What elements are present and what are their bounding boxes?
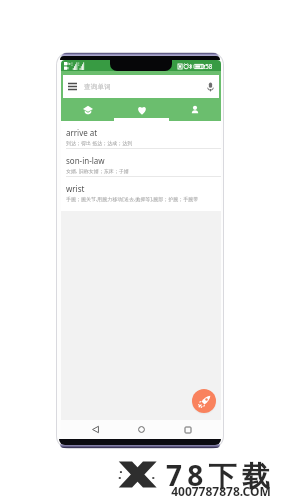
button[interactable]: Home [128,421,154,438]
staticText: 到达；得出 抵达；达成；达到 [66,140,133,147]
staticText: 78下载 [166,456,275,494]
button[interactable]: Decks [61,98,115,121]
staticText: 查询单词 [84,83,111,91]
button[interactable]: wrist [61,177,221,211]
staticText: 手腕；腕关节,用腕力移动[送去,抛掷等],腕部；护腕；手腕带 [66,196,199,203]
button[interactable]: Start practice [192,389,216,413]
button[interactable]: Menu [63,75,219,98]
button[interactable]: Recents [175,421,201,438]
staticText: arrive at [66,127,98,138]
staticText: 1:58 [200,62,213,70]
button[interactable]: Back [82,421,108,438]
staticText: 4007787878.COM [162,483,280,499]
button[interactable]: son-in-law [61,149,221,176]
staticText: wrist [66,183,85,194]
button[interactable]: Voice search [207,82,214,92]
staticText: son-in-law [66,155,105,166]
button[interactable]: Profile [168,98,221,121]
staticText: 女婿, 旧称女婿；东床；子婿 [66,168,129,175]
button[interactable]: Menu [68,83,77,90]
button[interactable]: arrive at [61,121,221,148]
button[interactable]: Favorites [115,98,168,121]
